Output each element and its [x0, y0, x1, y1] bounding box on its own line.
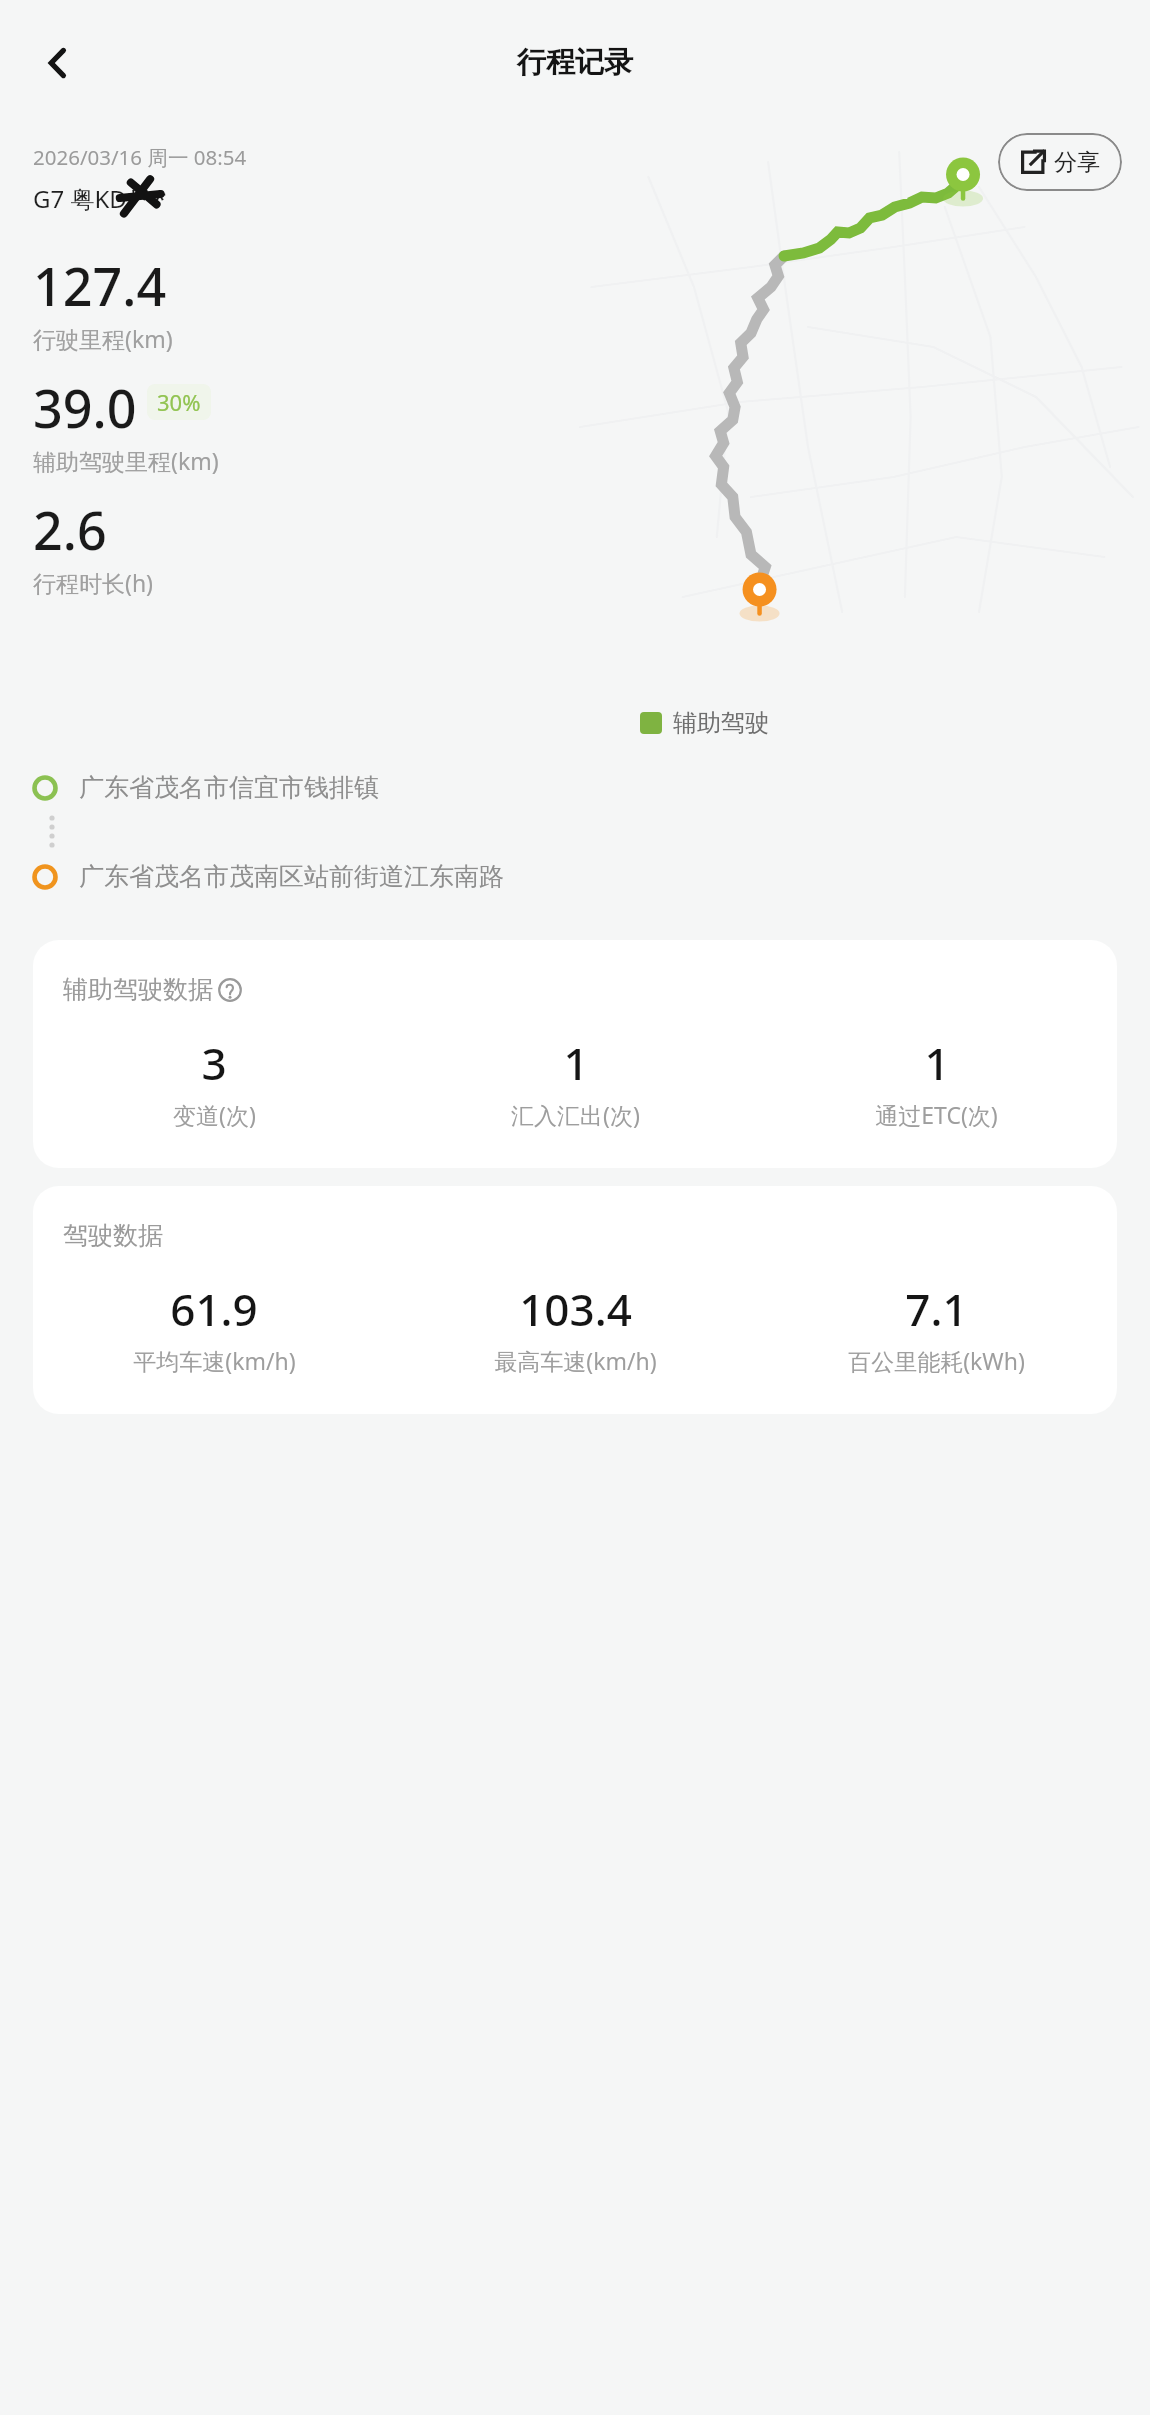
button[interactable]: 分享	[998, 133, 1122, 191]
staticText: 分享	[1054, 148, 1100, 177]
staticText: 驾驶数据	[63, 1220, 163, 1251]
staticText: 行程记录	[517, 44, 633, 81]
staticText: 辅助驾驶里程(km)	[33, 445, 219, 476]
staticText: 61.9	[170, 1279, 258, 1339]
staticText: 行驶里程(km)	[33, 323, 173, 354]
staticText: 汇入汇出(次)	[511, 1099, 640, 1130]
staticText: 3	[201, 1033, 227, 1093]
staticText: 39.0	[33, 372, 137, 443]
staticText: 广东省茂名市信宜市钱排镇	[79, 772, 379, 803]
staticText: 2.6	[33, 494, 107, 565]
staticText: 通过ETC(次)	[875, 1099, 998, 1130]
staticText: 7.1	[905, 1279, 968, 1339]
staticText: 辅助驾驶数据	[63, 974, 213, 1005]
staticText: 平均车速(km/h)	[133, 1345, 296, 1376]
staticText: 行程时长(h)	[33, 567, 154, 598]
staticText: 辅助驾驶	[673, 708, 769, 738]
staticText: 广东省茂名市茂南区站前街道江东南路	[79, 861, 504, 892]
staticText: 103.4	[519, 1279, 632, 1339]
staticText: 1	[563, 1033, 589, 1093]
staticText: 变道(次)	[173, 1099, 256, 1130]
staticText: 1	[924, 1033, 950, 1093]
staticText: G7 粤KD***	[33, 182, 167, 215]
button[interactable]: 驾驶数据	[33, 1186, 1117, 1414]
button[interactable]: 辅助驾驶数据	[33, 940, 1117, 1168]
staticText: 2026/03/16 周一 08:54	[33, 143, 247, 171]
staticText: 30%	[157, 387, 201, 417]
staticText: 127.4	[33, 250, 167, 321]
staticText: 最高车速(km/h)	[494, 1345, 657, 1376]
staticText: 百公里能耗(kWh)	[848, 1345, 1025, 1376]
button[interactable]: Back	[22, 27, 94, 99]
